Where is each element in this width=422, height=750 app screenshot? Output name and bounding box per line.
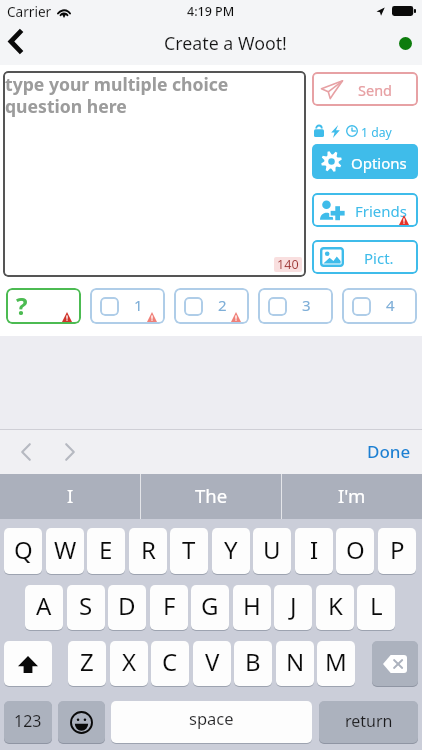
button[interactable]: Z	[68, 641, 106, 686]
staticText: M	[325, 645, 347, 678]
button[interactable]: S	[67, 585, 105, 630]
staticText: Options	[351, 153, 407, 173]
staticText: U	[263, 533, 281, 566]
button[interactable]: Back	[0, 22, 38, 65]
staticText: space	[189, 707, 234, 729]
button[interactable]: C	[151, 641, 189, 686]
staticText: L	[370, 589, 383, 622]
staticText: 2	[218, 295, 227, 315]
staticText: N	[286, 645, 305, 678]
button[interactable]: A	[25, 585, 63, 630]
button[interactable]: Options	[312, 144, 418, 179]
button[interactable]: B	[234, 641, 272, 686]
staticText: 1 day	[361, 124, 392, 141]
staticText: K	[328, 589, 343, 622]
button[interactable]: Q	[4, 528, 42, 574]
staticText: ?	[16, 289, 28, 322]
staticText: Z	[80, 645, 94, 678]
button[interactable]: K	[316, 585, 354, 630]
button[interactable]: E	[87, 528, 125, 574]
button[interactable]: 123	[4, 701, 52, 743]
staticText: Done	[367, 440, 411, 463]
button[interactable]: Pict.	[312, 240, 418, 274]
staticText: B	[245, 645, 261, 678]
button[interactable]: Online status	[399, 37, 412, 50]
button[interactable]: R	[129, 528, 167, 574]
button[interactable]: N	[276, 641, 314, 686]
button[interactable]: I'm	[282, 474, 422, 519]
staticText: F	[163, 589, 176, 622]
button[interactable]: I	[295, 528, 333, 574]
staticText: 4	[386, 295, 395, 315]
staticText: Send	[358, 80, 393, 100]
staticText: Q	[14, 533, 33, 566]
button[interactable]: H	[233, 585, 271, 630]
button[interactable]: M	[317, 641, 355, 686]
button[interactable]: type your multiple choice question here	[3, 71, 306, 277]
staticText: R	[141, 533, 156, 566]
staticText: G	[201, 589, 219, 622]
button[interactable]: W	[46, 528, 84, 574]
button[interactable]: Done	[356, 429, 422, 474]
button[interactable]: X	[110, 641, 148, 686]
button[interactable]: Y	[212, 528, 250, 574]
staticText: The	[195, 483, 228, 508]
staticText: P	[390, 533, 405, 566]
button[interactable]: G	[191, 585, 229, 630]
button[interactable]: 4	[342, 288, 417, 324]
button[interactable]: 1	[90, 288, 165, 324]
staticText: 140	[277, 257, 299, 271]
staticText: V	[205, 645, 220, 678]
button[interactable]: U	[253, 528, 291, 574]
staticText: S	[79, 589, 93, 622]
button[interactable]: Send	[312, 72, 418, 106]
staticText: Create a Woot!	[164, 31, 287, 55]
staticText: type your multiple choice question here	[5, 72, 229, 118]
button[interactable]: Shift	[4, 641, 52, 686]
button[interactable]: J	[274, 585, 312, 630]
button[interactable]: 2	[174, 288, 249, 324]
button[interactable]: Next field	[54, 436, 86, 468]
button[interactable]: space	[111, 701, 312, 743]
button[interactable]: T	[170, 528, 208, 574]
staticText: 3	[302, 295, 311, 315]
button[interactable]: return	[319, 701, 418, 743]
staticText: Friends	[355, 201, 407, 221]
staticText: H	[243, 589, 261, 622]
staticText: W	[54, 533, 77, 566]
staticText: E	[99, 533, 113, 566]
staticText: Pict.	[364, 248, 394, 268]
staticText: Carrier	[7, 2, 52, 21]
staticText: Y	[224, 533, 238, 566]
button[interactable]: ?	[6, 288, 81, 324]
staticText: D	[118, 589, 136, 622]
button[interactable]: Backspace	[372, 641, 418, 686]
button[interactable]: L	[357, 585, 395, 630]
staticText: return	[345, 710, 393, 732]
button[interactable]: I	[0, 474, 140, 519]
button[interactable]: F	[150, 585, 188, 630]
button[interactable]: P	[378, 528, 416, 574]
staticText: I	[310, 533, 319, 566]
button[interactable]: The	[141, 474, 281, 519]
staticText: I	[67, 483, 74, 508]
button[interactable]: D	[108, 585, 146, 630]
staticText: 4:19 PM	[187, 3, 235, 20]
button[interactable]: Previous field	[10, 436, 42, 468]
button[interactable]: O	[336, 528, 374, 574]
button[interactable]: V	[193, 641, 231, 686]
staticText: 123	[14, 710, 42, 732]
button[interactable]: Friends	[312, 193, 418, 227]
staticText: X	[122, 645, 137, 678]
staticText: J	[290, 589, 297, 622]
staticText: A	[36, 589, 52, 622]
staticText: I'm	[338, 483, 366, 508]
button[interactable]: 3	[258, 288, 333, 324]
staticText: O	[346, 533, 365, 566]
staticText: C	[162, 645, 178, 678]
button[interactable]: Emoji keyboard	[58, 701, 105, 743]
staticText: 1	[134, 295, 143, 315]
staticText: T	[182, 533, 196, 566]
